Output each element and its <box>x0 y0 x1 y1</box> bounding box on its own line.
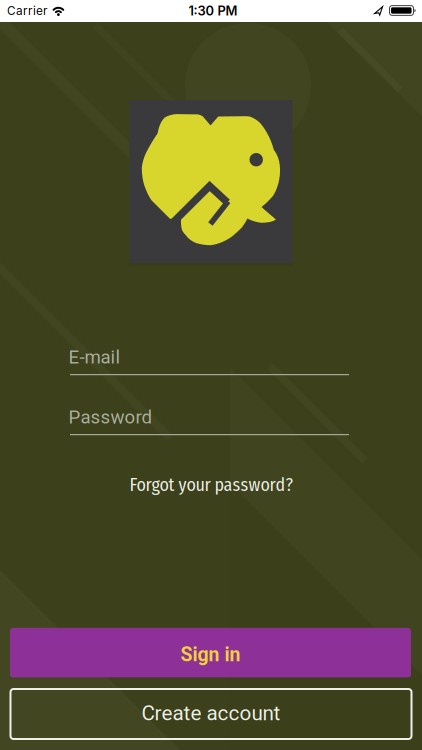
staticText: Password <box>68 406 152 428</box>
staticText: 1:30 PM <box>188 3 237 19</box>
button[interactable]: E-mail <box>0 342 422 372</box>
staticText: Sign in <box>180 643 240 666</box>
button[interactable]: Create account <box>10 689 411 739</box>
button[interactable]: Password <box>0 402 422 432</box>
button[interactable]: Sign in <box>10 628 411 677</box>
staticText: Create account <box>141 701 280 725</box>
button[interactable]: Forgot your password? <box>129 474 293 496</box>
staticText: E-mail <box>68 346 120 368</box>
staticText: Carrier <box>7 4 47 18</box>
staticText: Forgot your password? <box>129 474 293 496</box>
